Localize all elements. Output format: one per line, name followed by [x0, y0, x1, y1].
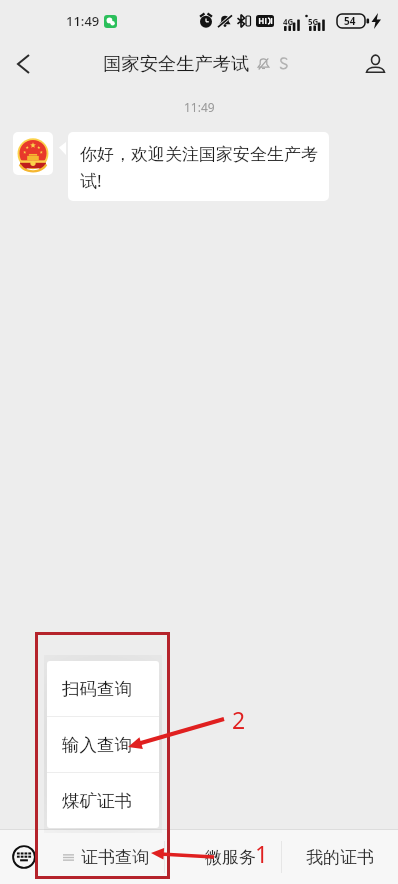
staticText: 你好，欢迎关注国家安全生产考试! — [80, 144, 323, 192]
staticText: 我的证书 — [306, 847, 374, 868]
staticText: 11:49 — [66, 12, 100, 30]
button[interactable]: 扫码查询 — [47, 661, 159, 716]
button[interactable]: 我的证书 — [282, 830, 398, 884]
button[interactable]: 微服务 — [165, 830, 281, 884]
button[interactable]: Profile — [352, 42, 398, 85]
staticText: 1 — [255, 838, 269, 869]
staticText: 54 — [344, 14, 356, 28]
staticText: 11:49 — [184, 99, 215, 115]
staticText: 5G — [308, 16, 319, 27]
staticText: 4G — [283, 16, 294, 27]
button[interactable]: Keyboard — [0, 830, 47, 884]
button[interactable]: 证书查询 — [47, 830, 164, 884]
staticText: 输入查询 — [62, 734, 132, 756]
staticText: 扫码查询 — [62, 678, 132, 700]
staticText: 微服务 — [205, 847, 256, 868]
staticText: 国家安全生产考试 — [103, 52, 250, 75]
button[interactable]: 煤矿证书 — [47, 773, 159, 828]
button[interactable]: Back — [0, 42, 46, 85]
staticText: 煤矿证书 — [62, 790, 132, 812]
staticText: 2 — [232, 704, 246, 735]
button[interactable]: 输入查询 — [47, 717, 159, 772]
staticText: 证书查询 — [81, 847, 149, 868]
